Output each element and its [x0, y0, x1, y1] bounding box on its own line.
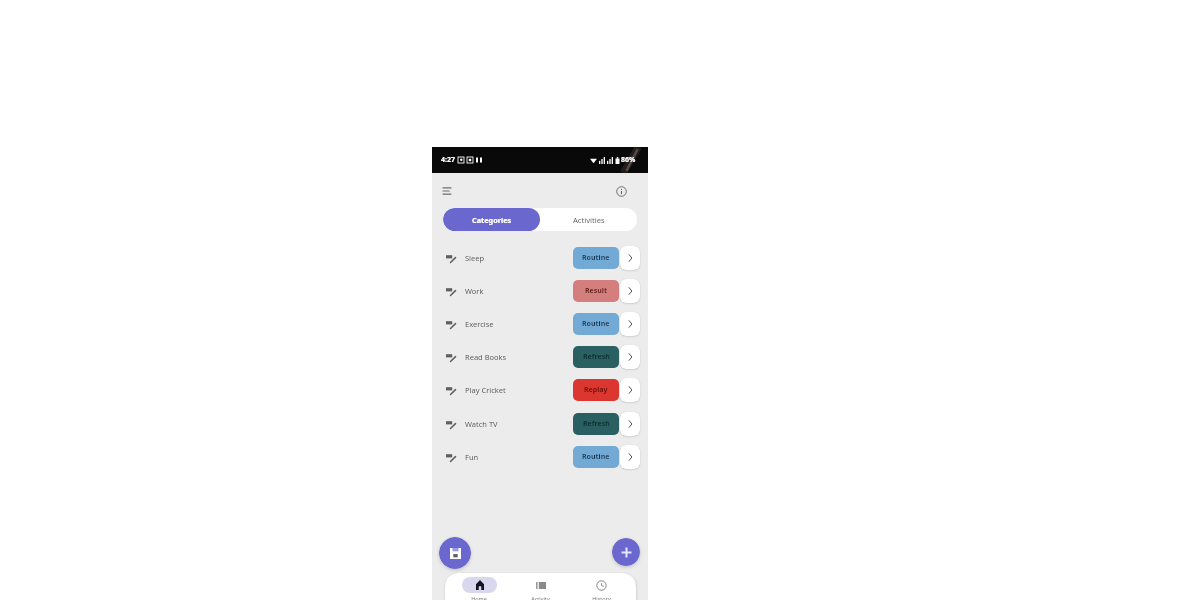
button[interactable]: Open Read Books [620, 345, 640, 369]
staticText: Result [585, 286, 607, 296]
staticText: 86% [621, 155, 636, 165]
button[interactable]: Open Work [620, 279, 640, 303]
button[interactable]: Home [459, 577, 499, 600]
staticText: Watch TV [465, 419, 498, 429]
staticText: Activities [573, 215, 605, 225]
staticText: Play Cricket [465, 385, 506, 395]
button[interactable]: Save [439, 537, 471, 569]
button[interactable]: Open Sleep [620, 246, 640, 270]
staticText: Home [471, 595, 487, 600]
button[interactable]: Open Play Cricket [620, 378, 640, 402]
button[interactable]: Read Books [432, 340, 648, 373]
button[interactable]: Sleep [432, 241, 648, 274]
button[interactable]: Activities [540, 208, 637, 231]
staticText: Activity [531, 595, 550, 600]
button[interactable]: Watch TV [432, 407, 648, 440]
staticText: Routine [582, 452, 610, 462]
staticText: Refresh [583, 419, 610, 429]
staticText: Refresh [583, 352, 610, 362]
staticText: History [592, 595, 611, 600]
staticText: 4:27 [441, 155, 455, 165]
button[interactable]: Open Exercise [620, 312, 640, 336]
button[interactable]: Work [432, 274, 648, 307]
button[interactable]: Fun [432, 440, 648, 473]
button[interactable]: History [581, 577, 621, 600]
staticText: Exercise [465, 319, 494, 329]
button[interactable]: Menu [439, 183, 455, 199]
staticText: Routine [582, 319, 610, 329]
staticText: Sleep [465, 253, 485, 263]
staticText: Categories [472, 215, 512, 225]
button[interactable]: Info [613, 183, 629, 199]
staticText: Read Books [465, 352, 507, 362]
button[interactable]: Exercise [432, 307, 648, 340]
button[interactable]: Add [612, 538, 640, 566]
button[interactable]: Open Fun [620, 445, 640, 469]
button[interactable]: Open Watch TV [620, 412, 640, 436]
staticText: Fun [465, 452, 479, 462]
staticText: Replay [584, 385, 608, 395]
button[interactable]: Activity [520, 577, 560, 600]
button[interactable]: Categories [443, 208, 540, 231]
staticText: Routine [582, 253, 610, 263]
button[interactable]: Play Cricket [432, 373, 648, 406]
staticText: Work [465, 286, 484, 296]
